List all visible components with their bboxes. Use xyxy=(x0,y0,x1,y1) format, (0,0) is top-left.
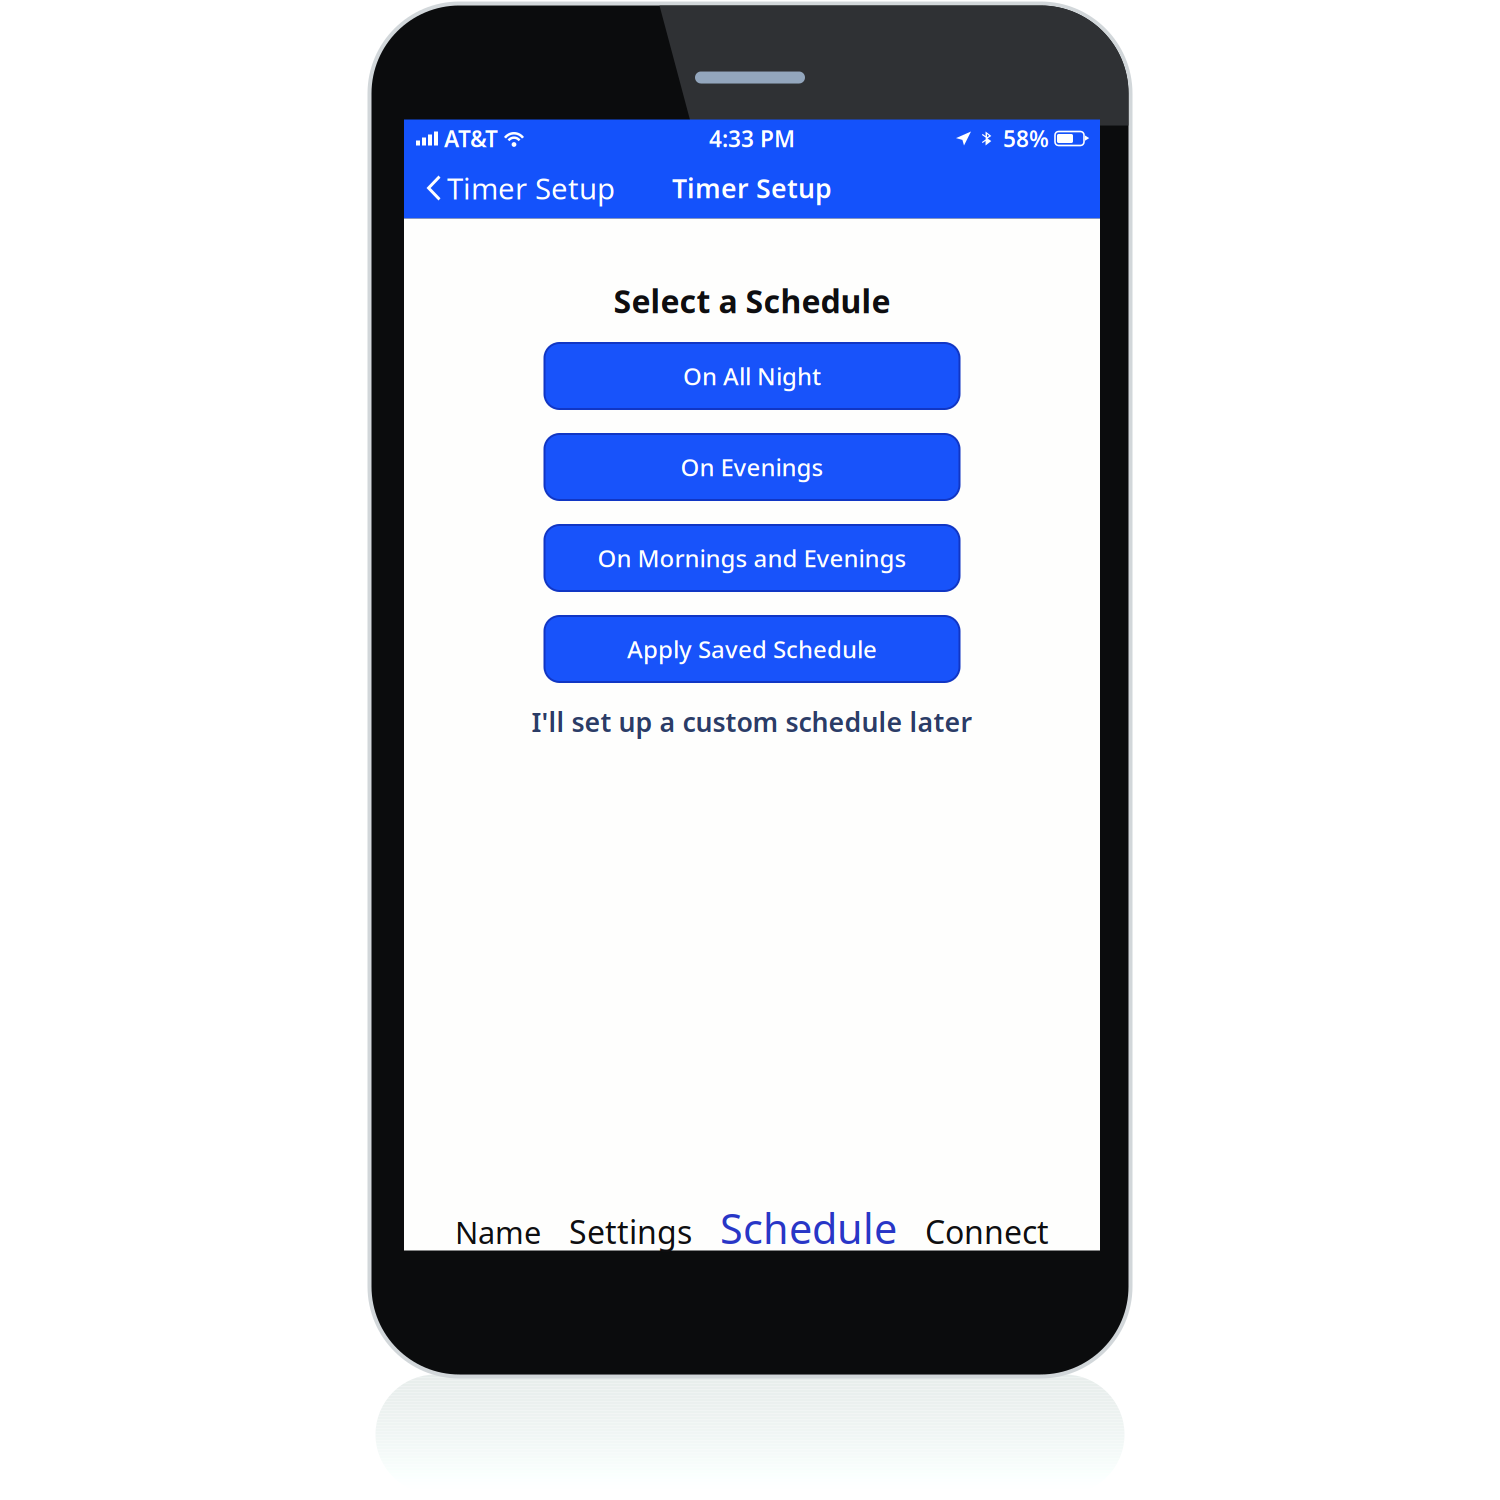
button[interactable]: Name xyxy=(441,1190,555,1262)
staticText: On Evenings xyxy=(680,451,823,483)
staticText: Apply Saved Schedule xyxy=(627,633,877,665)
button[interactable]: Back to Timer Setup xyxy=(404,157,627,218)
staticText: On All Night xyxy=(683,360,821,392)
staticText: Name xyxy=(455,1212,541,1252)
staticText: Select a Schedule xyxy=(613,279,890,322)
staticText: Settings xyxy=(569,1210,692,1253)
button[interactable]: Connect xyxy=(911,1188,1063,1263)
staticText: 58% xyxy=(1003,123,1049,153)
staticText: 4:33 PM xyxy=(709,123,795,153)
button[interactable]: On Evenings xyxy=(544,434,959,500)
staticText: I'll set up a custom schedule later xyxy=(531,704,972,739)
staticText: AT&T xyxy=(444,123,498,153)
staticText: Connect xyxy=(925,1210,1049,1253)
staticText: Timer Setup xyxy=(447,168,615,207)
button[interactable]: Settings xyxy=(555,1188,706,1263)
staticText: Schedule xyxy=(720,1200,897,1255)
button[interactable]: On All Night xyxy=(544,343,959,409)
button[interactable]: On Mornings and Evenings xyxy=(544,525,959,591)
button[interactable]: I'll set up a custom schedule later xyxy=(521,698,982,745)
button[interactable]: Schedule xyxy=(706,1178,911,1265)
staticText: Timer Setup xyxy=(672,170,832,206)
button[interactable]: Apply Saved Schedule xyxy=(544,616,959,682)
staticText: On Mornings and Evenings xyxy=(597,542,906,574)
